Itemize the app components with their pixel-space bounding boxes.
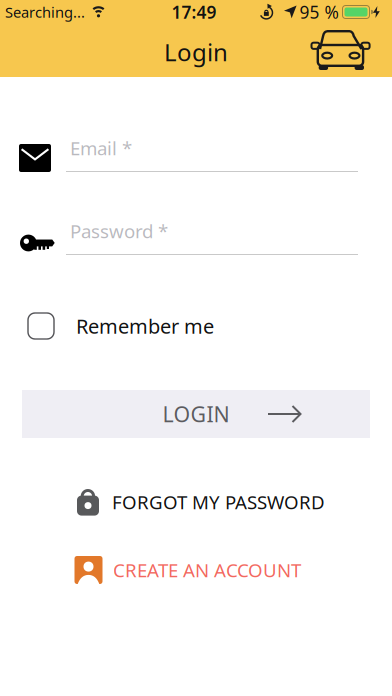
staticText: CREATE AN ACCOUNT: [113, 558, 301, 582]
button[interactable]: Password: [19, 215, 358, 265]
staticText: FORGOT MY PASSWORD: [112, 490, 325, 514]
button[interactable]: Remember me: [28, 313, 298, 339]
staticText: Email *: [70, 136, 132, 160]
button[interactable]: CREATE AN ACCOUNT: [74, 556, 354, 584]
staticText: LOGIN: [162, 400, 229, 428]
button[interactable]: FORGOT MY PASSWORD: [77, 485, 357, 517]
button[interactable]: LOGIN: [22, 390, 370, 438]
staticText: Login: [164, 36, 228, 68]
staticText: 95 %: [299, 0, 338, 23]
staticText: 17:49: [171, 0, 216, 23]
button[interactable]: Email: [19, 130, 358, 180]
staticText: Remember me: [76, 313, 214, 339]
staticText: Searching...: [5, 2, 85, 22]
staticText: Password *: [70, 219, 168, 243]
